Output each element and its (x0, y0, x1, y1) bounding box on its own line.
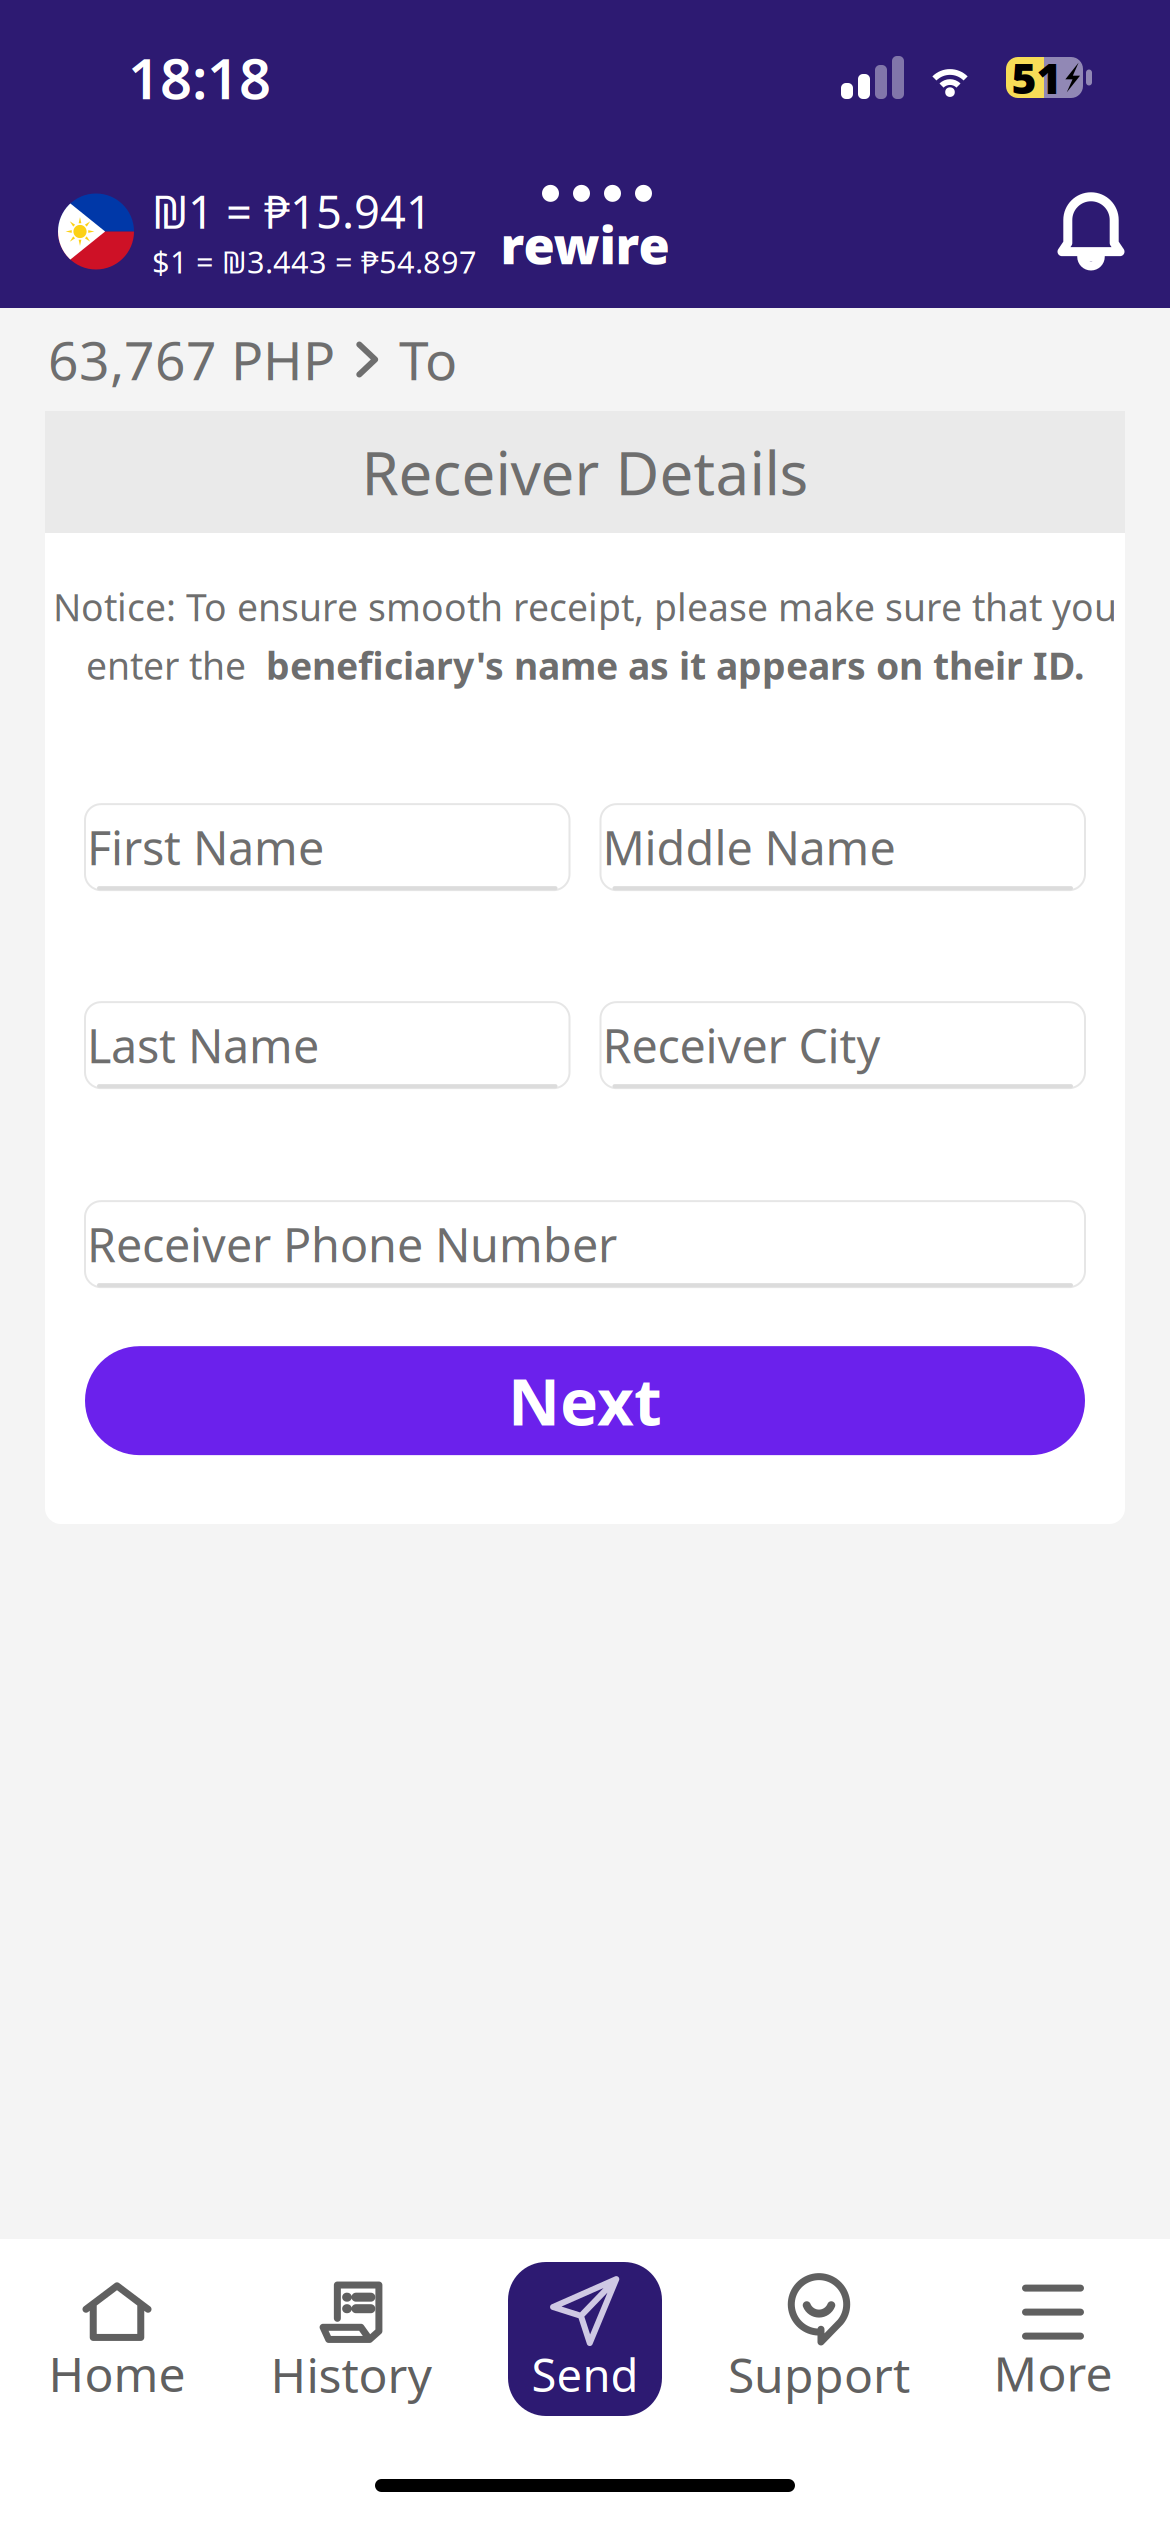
staticText: Last Name (87, 1014, 319, 1076)
button[interactable]: Last Name (85, 1002, 569, 1088)
staticText: Send (531, 2344, 638, 2405)
staticText: 51 (1011, 49, 1061, 106)
button[interactable]: Middle Name (600, 804, 1085, 890)
button[interactable]: History (234, 2239, 468, 2439)
staticText: enter the beneficiary's name as it appea… (86, 641, 1084, 690)
staticText: Middle Name (602, 816, 895, 878)
staticText: Receiver Phone Number (87, 1213, 617, 1275)
staticText: Next (508, 1358, 662, 1443)
staticText: More (993, 2341, 1112, 2405)
staticText: 18:18 (128, 40, 271, 115)
staticText: 63,767 PHP (48, 324, 335, 395)
button[interactable]: First Name (85, 804, 569, 890)
button[interactable]: Support (702, 2239, 936, 2439)
staticText: Support (728, 2343, 910, 2406)
staticText: Home (48, 2342, 185, 2405)
staticText: History (270, 2343, 431, 2406)
button[interactable]: ₪1 = ₱15.941 (58, 181, 477, 282)
button[interactable]: Send (508, 2262, 662, 2416)
button[interactable]: 63,767 PHP (48, 324, 335, 395)
button[interactable]: Receiver Phone Number (85, 1201, 1085, 1287)
button[interactable]: Home (0, 2239, 234, 2439)
button[interactable]: More (936, 2239, 1170, 2439)
staticText: rewire (500, 211, 669, 278)
button[interactable]: Notifications (1048, 181, 1134, 281)
staticText: ₪1 = ₱15.941 (152, 181, 432, 241)
staticText: Receiver City (602, 1014, 880, 1076)
staticText: To (399, 324, 457, 395)
button[interactable]: Receiver City (600, 1002, 1085, 1088)
staticText: Notice: To ensure smooth receipt, please… (53, 582, 1117, 632)
staticText: Receiver Details (361, 432, 808, 512)
button[interactable]: Next (85, 1346, 1085, 1455)
staticText: First Name (87, 816, 324, 878)
staticText: $1 = ₪3.443 = ₱54.897 (152, 241, 477, 282)
